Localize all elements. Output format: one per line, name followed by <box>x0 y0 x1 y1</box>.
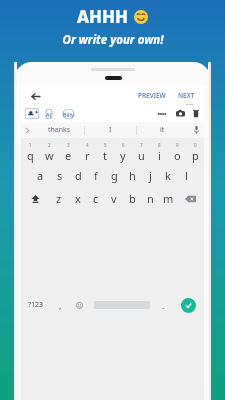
button[interactable]: c <box>87 187 105 210</box>
staticText: ?123 <box>28 300 44 310</box>
button[interactable]: thanks <box>34 122 84 138</box>
button[interactable]: n <box>141 187 159 210</box>
button[interactable]: More options <box>155 110 169 118</box>
button[interactable]: Back <box>27 88 43 104</box>
staticText: i <box>158 148 161 163</box>
staticText: o <box>174 148 181 163</box>
button[interactable]: 6 <box>114 140 132 164</box>
button[interactable]: PREVIEW <box>135 89 169 102</box>
staticText: x <box>75 191 81 206</box>
button[interactable]: Expand suggestions <box>21 122 34 138</box>
button[interactable]: Billy <box>59 109 78 119</box>
staticText: l <box>185 168 188 183</box>
button[interactable]: 0 <box>186 140 204 164</box>
button[interactable]: AJ <box>42 109 56 119</box>
staticText: I <box>109 125 112 135</box>
staticText: 3 <box>67 142 70 148</box>
button[interactable]: it <box>137 122 188 138</box>
button[interactable]: g <box>105 164 123 187</box>
button[interactable]: z <box>49 187 68 210</box>
staticText: f <box>94 168 98 183</box>
button[interactable]: s <box>50 164 69 187</box>
button[interactable]: Add person <box>25 108 39 119</box>
staticText: b <box>129 191 136 206</box>
staticText: NEXT <box>178 91 195 100</box>
staticText: AJ <box>46 111 52 118</box>
staticText: a <box>37 168 44 183</box>
staticText: 4 <box>86 142 89 148</box>
button[interactable]: Emoji <box>70 210 89 400</box>
staticText: v <box>111 191 117 206</box>
staticText: d <box>75 168 82 183</box>
button[interactable]: Space <box>89 210 154 400</box>
staticText: w <box>45 148 54 163</box>
staticText: 9 <box>176 142 179 148</box>
staticText: j <box>149 168 152 183</box>
button[interactable]: 7 <box>132 140 150 164</box>
staticText: AHHH <box>77 5 129 28</box>
staticText: u <box>138 148 145 163</box>
button[interactable]: 5 <box>96 140 114 164</box>
button[interactable]: j <box>141 164 159 187</box>
button[interactable]: 8 <box>150 140 168 164</box>
staticText: c <box>93 191 99 206</box>
staticText: n <box>147 191 154 206</box>
staticText: m <box>163 191 174 206</box>
button[interactable]: NEXT <box>175 89 198 102</box>
button[interactable]: 9 <box>168 140 186 164</box>
staticText: s <box>57 168 63 183</box>
button[interactable]: 3 <box>59 140 78 164</box>
button[interactable]: v <box>105 187 123 210</box>
button[interactable]: 4 <box>78 140 96 164</box>
staticText: PREVIEW <box>138 91 166 100</box>
staticText: . <box>162 299 165 311</box>
button[interactable]: a <box>31 164 50 187</box>
staticText: Or write your own! <box>62 32 164 48</box>
staticText: Billy <box>63 111 74 118</box>
button[interactable]: l <box>177 164 195 187</box>
staticText: 0 <box>194 142 197 148</box>
staticText: z <box>56 191 62 206</box>
button[interactable]: Backspace <box>177 187 204 210</box>
staticText: y <box>120 148 126 163</box>
button[interactable]: b <box>123 187 141 210</box>
button[interactable]: 2 <box>40 140 59 164</box>
button[interactable]: Done <box>173 210 204 400</box>
staticText: e <box>65 148 72 163</box>
staticText: 7 <box>140 142 143 148</box>
staticText: 1 <box>29 142 32 148</box>
button[interactable]: f <box>87 164 105 187</box>
button[interactable]: Delete <box>192 108 200 119</box>
button[interactable]: ?123 <box>21 210 51 400</box>
staticText: g <box>111 168 118 183</box>
staticText: it <box>160 125 165 135</box>
staticText: k <box>165 168 171 183</box>
staticText: 5 <box>104 142 107 148</box>
staticText: 8 <box>158 142 161 148</box>
staticText: 6 <box>122 142 125 148</box>
staticText: 2 <box>48 142 51 148</box>
staticText: thanks <box>48 125 71 135</box>
staticText: p <box>192 148 199 163</box>
button[interactable]: Shift <box>21 187 49 210</box>
button[interactable]: h <box>123 164 141 187</box>
staticText: r <box>85 148 90 163</box>
staticText: h <box>129 168 136 183</box>
button[interactable]: I <box>85 122 136 138</box>
button[interactable]: Camera <box>175 108 186 119</box>
button[interactable]: m <box>159 187 177 210</box>
staticText: q <box>27 148 34 163</box>
staticText: , <box>59 299 62 311</box>
staticText: t <box>103 148 107 163</box>
button[interactable]: d <box>69 164 87 187</box>
button[interactable]: x <box>68 187 87 210</box>
button[interactable]: 1 <box>21 140 40 164</box>
button[interactable]: Voice input <box>188 122 204 138</box>
button[interactable]: k <box>159 164 177 187</box>
